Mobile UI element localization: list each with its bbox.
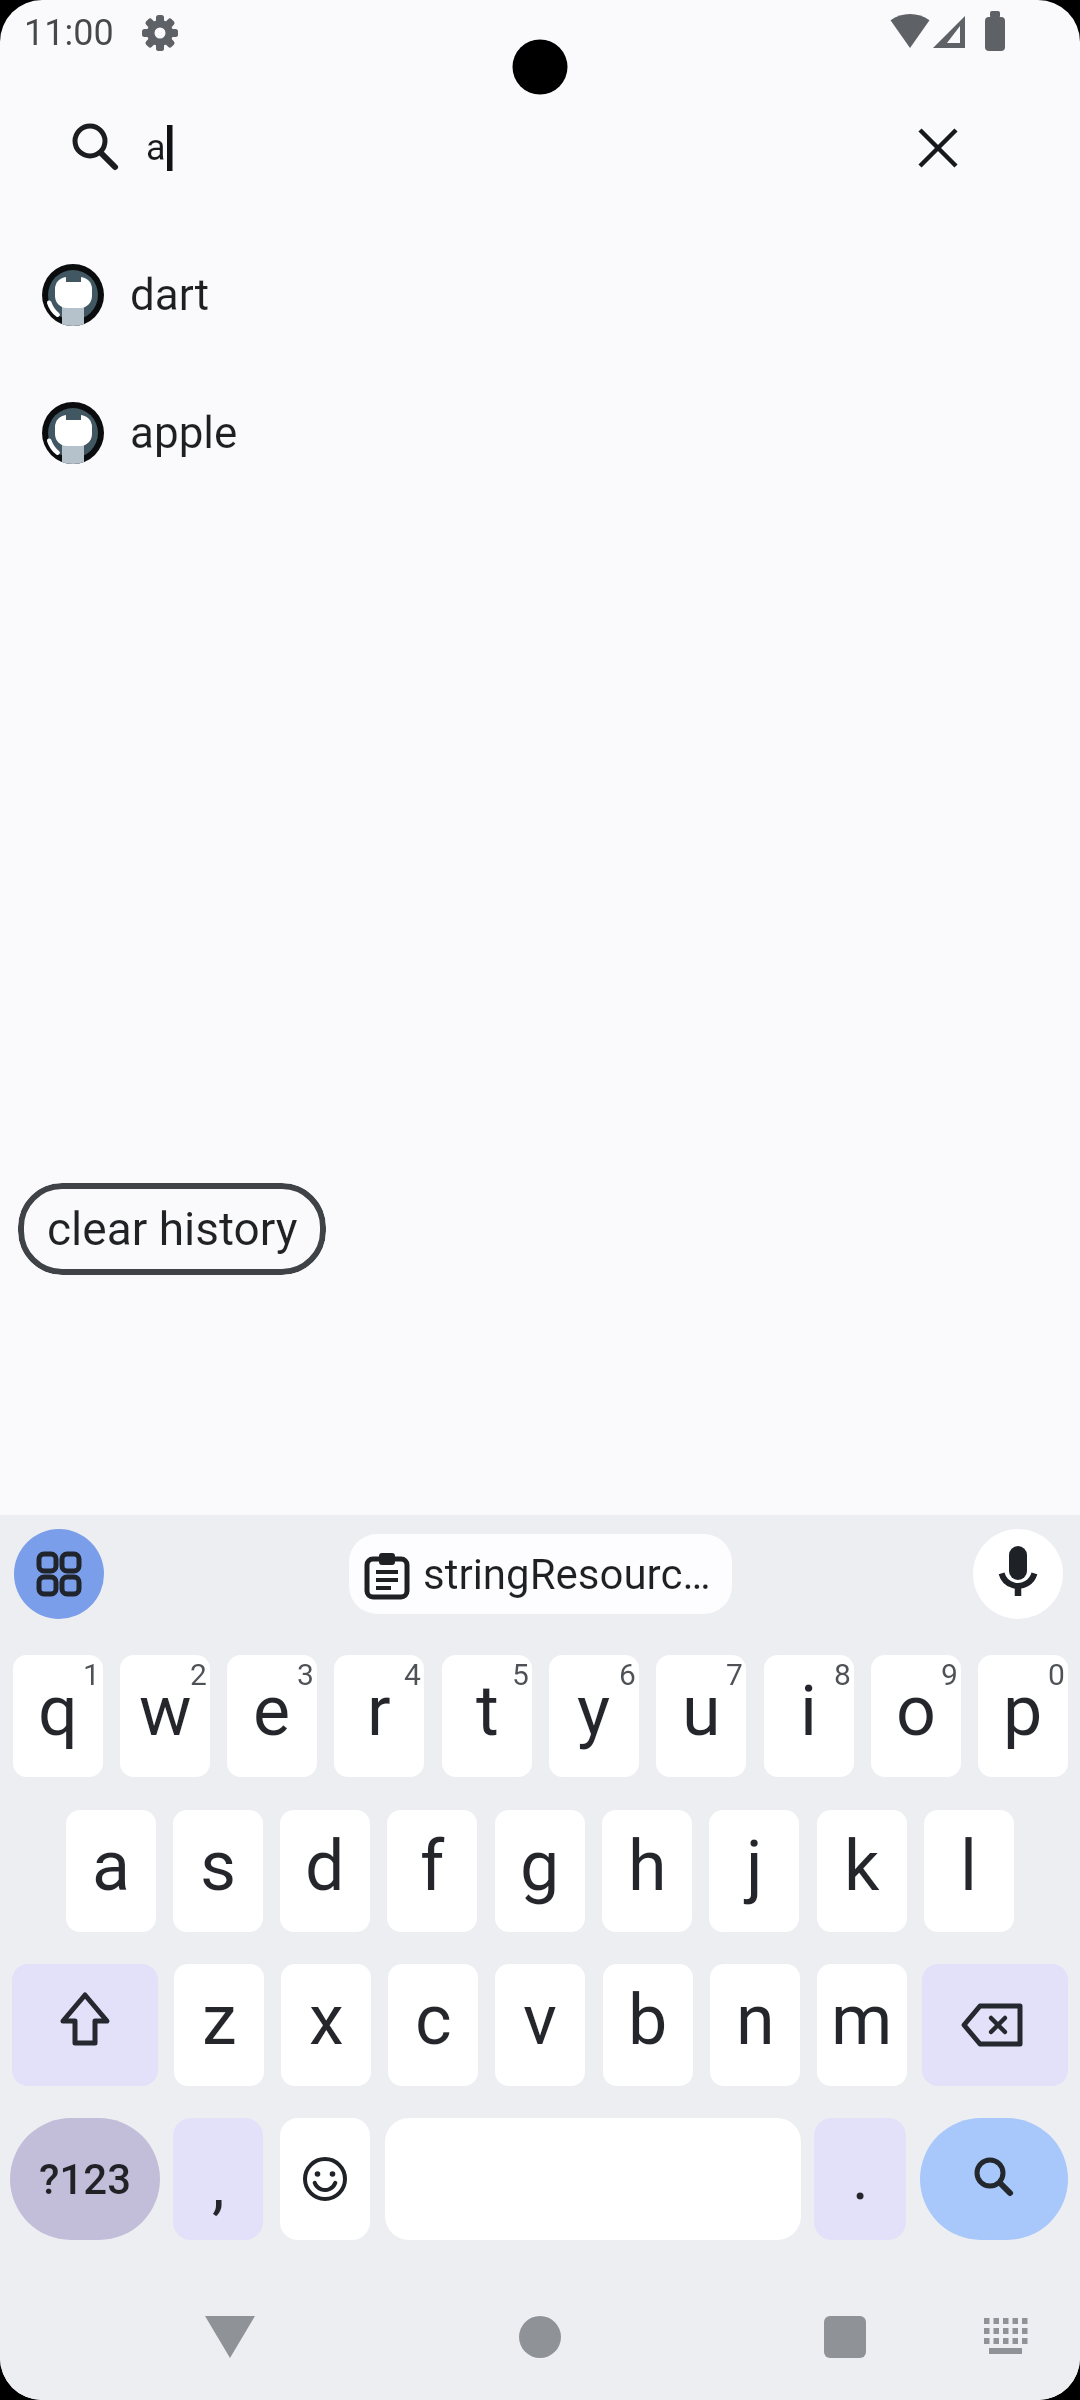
staticText: clear history (47, 1202, 298, 1256)
button[interactable] (180, 2300, 280, 2374)
staticText: , (212, 2148, 225, 2223)
button[interactable]: i (764, 1655, 854, 1777)
staticText: 3 (297, 1657, 314, 1692)
button[interactable] (970, 2300, 1050, 2374)
staticText: e (253, 1670, 291, 1752)
staticText: 5 (512, 1657, 529, 1692)
button[interactable] (14, 1529, 104, 1619)
staticText: q (38, 1670, 78, 1752)
staticText: a (146, 127, 166, 169)
staticText: s (200, 1825, 237, 1907)
staticText: v (523, 1979, 557, 2061)
button[interactable]: g (495, 1810, 585, 1932)
button[interactable]: o (871, 1655, 961, 1777)
button[interactable]: k (817, 1810, 907, 1932)
button[interactable]: clear history (18, 1183, 326, 1275)
button[interactable]: l (924, 1810, 1014, 1932)
button[interactable]: q (13, 1655, 103, 1777)
button[interactable] (905, 115, 971, 181)
staticText: g (520, 1825, 560, 1907)
button[interactable]: m (817, 1964, 907, 2086)
staticText: a (92, 1825, 131, 1907)
button[interactable]: . (814, 2118, 906, 2240)
button[interactable] (920, 2118, 1068, 2240)
staticText: o (896, 1670, 936, 1752)
button[interactable]: n (710, 1964, 800, 2086)
button[interactable] (795, 2300, 895, 2374)
button[interactable]: f (387, 1810, 477, 1932)
staticText: 11:00 (24, 12, 114, 54)
button[interactable]: apple (42, 402, 1056, 464)
staticText: 2 (190, 1657, 207, 1692)
staticText: dart (130, 269, 210, 321)
button[interactable]: c (388, 1964, 478, 2086)
button[interactable]: b (603, 1964, 693, 2086)
staticText: l (960, 1825, 978, 1907)
staticText: h (628, 1825, 667, 1907)
staticText: 9 (941, 1657, 958, 1692)
staticText: y (577, 1670, 611, 1752)
staticText: x (309, 1979, 344, 2061)
button[interactable]: e (227, 1655, 317, 1777)
button[interactable]: r (334, 1655, 424, 1777)
staticText: z (202, 1979, 237, 2061)
staticText: ?123 (39, 2155, 132, 2204)
button[interactable]: s (173, 1810, 263, 1932)
button[interactable]: p (978, 1655, 1068, 1777)
button[interactable] (12, 1964, 158, 2086)
staticText: 7 (726, 1657, 743, 1692)
button[interactable]: j (709, 1810, 799, 1932)
button[interactable]: u (656, 1655, 746, 1777)
button[interactable]: dart (42, 264, 1056, 326)
staticText: 0 (1048, 1657, 1065, 1692)
staticText: u (682, 1670, 721, 1752)
button[interactable] (973, 1529, 1063, 1619)
button[interactable]: a (66, 1810, 156, 1932)
staticText: apple (130, 407, 238, 459)
staticText: 8 (834, 1657, 851, 1692)
button[interactable] (60, 110, 130, 180)
button[interactable]: x (281, 1964, 371, 2086)
staticText: d (305, 1825, 345, 1907)
button[interactable]: stringResourc… (349, 1534, 732, 1614)
staticText: m (831, 1979, 893, 2061)
button[interactable]: h (602, 1810, 692, 1932)
button[interactable] (922, 1964, 1068, 2086)
button[interactable] (280, 2118, 370, 2240)
staticText: . (852, 2140, 869, 2215)
staticText: w (139, 1670, 192, 1752)
button[interactable]: , (173, 2118, 263, 2240)
button[interactable]: t (442, 1655, 532, 1777)
staticText: r (367, 1670, 391, 1752)
button[interactable]: w (120, 1655, 210, 1777)
staticText: 4 (404, 1657, 421, 1692)
button[interactable]: y (549, 1655, 639, 1777)
staticText: p (1003, 1670, 1043, 1752)
staticText: f (420, 1825, 445, 1907)
button[interactable]: d (280, 1810, 370, 1932)
button[interactable] (490, 2300, 590, 2374)
staticText: k (844, 1825, 880, 1907)
staticText: c (415, 1979, 452, 2061)
staticText: stringResourc… (423, 1550, 711, 1599)
button[interactable]: ?123 (10, 2118, 160, 2240)
button[interactable]: v (495, 1964, 585, 2086)
staticText: n (736, 1979, 775, 2061)
staticText: j (746, 1825, 763, 1907)
staticText: b (628, 1979, 668, 2061)
staticText: i (800, 1670, 818, 1752)
staticText: t (476, 1670, 499, 1752)
button[interactable]: z (174, 1964, 264, 2086)
staticText: 1 (83, 1657, 100, 1692)
staticText: 6 (619, 1657, 636, 1692)
